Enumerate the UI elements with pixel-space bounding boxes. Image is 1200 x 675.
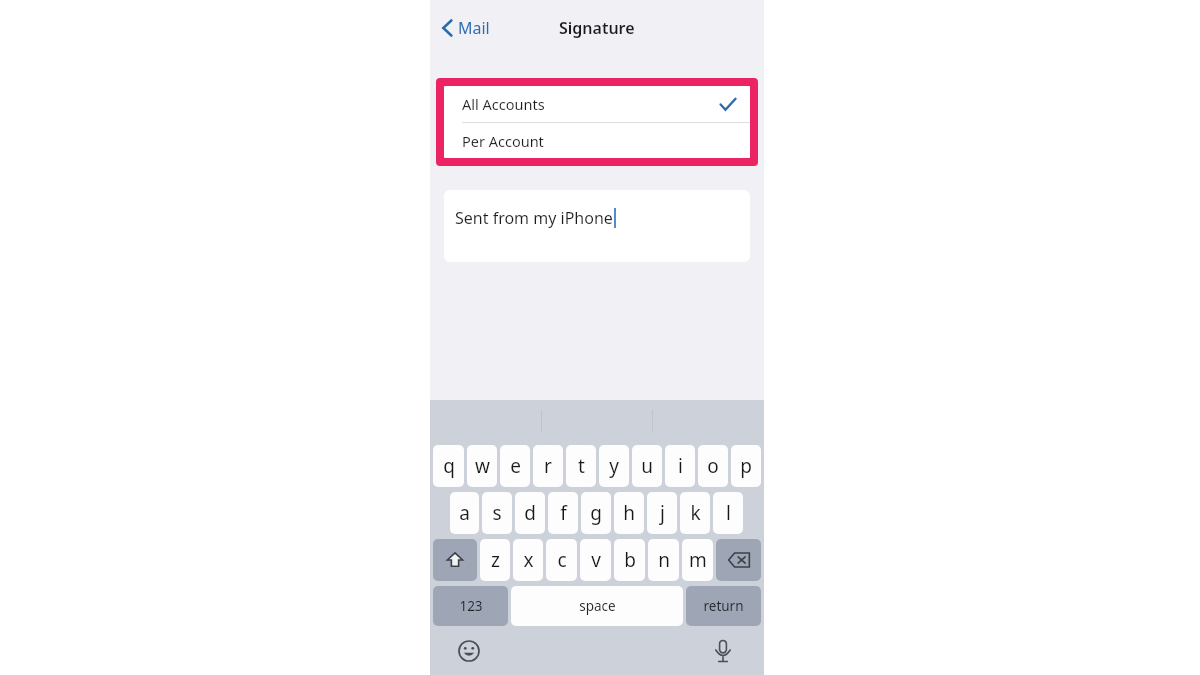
- staticText: u: [641, 453, 653, 479]
- button[interactable]: a: [450, 492, 479, 534]
- button[interactable]: return: [686, 586, 761, 626]
- staticText: b: [624, 547, 636, 573]
- button[interactable]: Mail: [436, 11, 496, 45]
- staticText: r: [544, 453, 552, 479]
- button[interactable]: space: [511, 586, 683, 626]
- staticText: Sent from my iPhone: [455, 207, 613, 229]
- button[interactable]: g: [581, 492, 611, 534]
- staticText: n: [658, 547, 670, 573]
- button[interactable]: e: [500, 445, 530, 487]
- staticText: 123: [459, 597, 483, 615]
- button[interactable]: r: [533, 445, 563, 487]
- button[interactable]: Shift: [433, 539, 477, 581]
- button[interactable]: n: [648, 539, 679, 581]
- staticText: o: [707, 453, 719, 479]
- staticText: Per Account: [462, 131, 544, 151]
- button[interactable]: i: [665, 445, 695, 487]
- button[interactable]: c: [546, 539, 577, 581]
- staticText: All Accounts: [462, 94, 545, 114]
- button[interactable]: p: [731, 445, 761, 487]
- button[interactable]: Sent from my iPhone: [444, 190, 750, 262]
- button[interactable]: x: [513, 539, 543, 581]
- button[interactable]: u: [632, 445, 662, 487]
- staticText: a: [459, 500, 470, 526]
- staticText: e: [510, 453, 521, 479]
- staticText: m: [689, 547, 707, 573]
- staticText: l: [726, 500, 731, 526]
- staticText: d: [524, 500, 536, 526]
- staticText: f: [560, 500, 567, 526]
- button[interactable]: s: [482, 492, 512, 534]
- staticText: x: [523, 547, 534, 573]
- button[interactable]: Backspace: [716, 539, 761, 581]
- button[interactable]: Per Account: [444, 123, 750, 158]
- staticText: space: [579, 597, 616, 615]
- button[interactable]: q: [433, 445, 464, 487]
- staticText: k: [690, 500, 701, 526]
- staticText: z: [491, 547, 500, 573]
- staticText: w: [475, 453, 490, 479]
- staticText: p: [740, 453, 752, 479]
- staticText: Signature: [559, 17, 635, 39]
- button[interactable]: All Accounts: [444, 86, 750, 122]
- staticText: Mail: [458, 17, 490, 39]
- staticText: return: [703, 597, 744, 615]
- button[interactable]: k: [680, 492, 710, 534]
- staticText: j: [660, 500, 665, 526]
- button[interactable]: v: [580, 539, 611, 581]
- button[interactable]: l: [713, 492, 743, 534]
- staticText: t: [578, 453, 585, 479]
- button[interactable]: Dictation: [706, 634, 740, 668]
- button[interactable]: h: [614, 492, 644, 534]
- button[interactable]: 123: [433, 586, 508, 626]
- staticText: h: [623, 500, 635, 526]
- button[interactable]: j: [647, 492, 677, 534]
- staticText: i: [678, 453, 683, 479]
- button[interactable]: b: [614, 539, 645, 581]
- button[interactable]: d: [515, 492, 545, 534]
- button[interactable]: m: [682, 539, 713, 581]
- button[interactable]: o: [698, 445, 728, 487]
- staticText: g: [590, 500, 602, 526]
- button[interactable]: t: [566, 445, 596, 487]
- staticText: q: [443, 453, 455, 479]
- button[interactable]: y: [599, 445, 629, 487]
- staticText: s: [492, 500, 502, 526]
- button[interactable]: Emoji: [452, 634, 486, 668]
- staticText: y: [609, 453, 619, 479]
- staticText: c: [557, 547, 567, 573]
- button[interactable]: f: [548, 492, 578, 534]
- button[interactable]: w: [467, 445, 497, 487]
- staticText: v: [591, 547, 601, 573]
- button[interactable]: z: [480, 539, 510, 581]
